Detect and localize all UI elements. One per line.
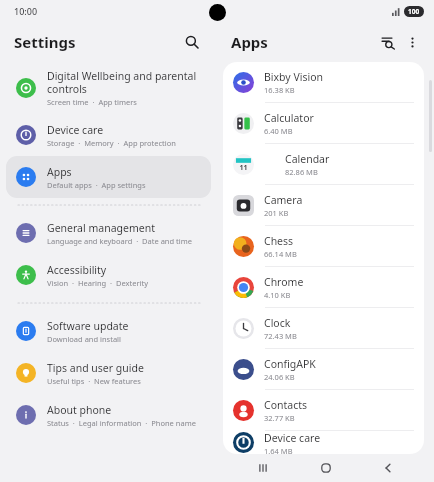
staticText: Contacts [264, 398, 308, 412]
staticText: 32.77 KB [264, 413, 295, 423]
staticText: Camera [264, 193, 303, 207]
staticText: 72.43 MB [264, 331, 297, 341]
button[interactable]: Calculator [223, 103, 424, 143]
button[interactable]: Device care [223, 431, 424, 454]
staticText: Software update [47, 319, 129, 333]
button[interactable]: Software update [6, 310, 211, 352]
staticText: 10:00 [14, 5, 38, 17]
button[interactable]: Sort and search [376, 30, 400, 54]
button[interactable]: Recents [246, 454, 280, 482]
button[interactable]: Digital Wellbeing and parental controls [6, 62, 211, 114]
button[interactable]: Tips and user guide [6, 352, 211, 394]
button[interactable]: Chrome [223, 267, 424, 307]
staticText: 4.10 KB [264, 290, 291, 300]
staticText: General management [47, 221, 155, 235]
staticText: 1.64 MB [264, 446, 293, 454]
staticText: Chess [264, 234, 294, 248]
staticText: Useful tips · New features [47, 376, 141, 386]
button[interactable]: Chess [223, 226, 424, 266]
button[interactable]: ConfigAPK [223, 349, 424, 389]
button[interactable]: Accessibility [6, 254, 211, 296]
button[interactable]: General management [6, 212, 211, 254]
staticText: Calendar [285, 152, 330, 166]
staticText: Device care [47, 123, 104, 137]
staticText: Bixby Vision [264, 70, 324, 84]
button[interactable]: More options [400, 30, 424, 54]
button[interactable]: Back [371, 454, 405, 482]
staticText: 24.06 KB [264, 372, 295, 382]
staticText: 66.14 MB [264, 249, 297, 259]
staticText: Apps [231, 32, 268, 52]
staticText: 201 KB [264, 208, 289, 218]
staticText: Calculator [264, 111, 314, 125]
staticText: Accessibility [47, 263, 107, 277]
button[interactable]: Device care [6, 114, 211, 156]
staticText: Download and install [47, 334, 121, 344]
staticText: Device care [264, 431, 321, 445]
staticText: About phone [47, 403, 112, 417]
staticText: 6.40 MB [264, 126, 293, 136]
button[interactable]: Contacts [223, 390, 424, 430]
staticText: Chrome [264, 275, 304, 289]
staticText: 11 [239, 163, 248, 173]
staticText: 16.38 KB [264, 85, 295, 95]
button[interactable]: Apps [6, 156, 211, 198]
button[interactable]: Camera [223, 185, 424, 225]
staticText: Language and keyboard · Date and time [47, 236, 192, 246]
staticText: Storage · Memory · App protection [47, 138, 176, 148]
button[interactable]: Search settings [179, 29, 205, 55]
button[interactable]: Home [309, 454, 343, 482]
staticText: ConfigAPK [264, 357, 316, 371]
staticText: Clock [264, 316, 291, 330]
button[interactable]: About phone [6, 394, 211, 436]
staticText: Default apps · App settings [47, 180, 146, 190]
staticText: Apps [47, 165, 72, 179]
staticText: Screen time · App timers [47, 97, 137, 107]
staticText: Digital Wellbeing and parental controls [47, 69, 197, 96]
button[interactable]: Clock [223, 308, 424, 348]
staticText: Settings [14, 32, 76, 52]
staticText: Status · Legal information · Phone name [47, 418, 196, 428]
staticText: 100 [408, 7, 420, 16]
staticText: 82.86 MB [285, 167, 318, 177]
staticText: Tips and user guide [47, 361, 144, 375]
button[interactable]: 11 [223, 144, 424, 184]
staticText: Vision · Hearing · Dexterity [47, 278, 149, 288]
button[interactable]: Bixby Vision [223, 62, 424, 102]
